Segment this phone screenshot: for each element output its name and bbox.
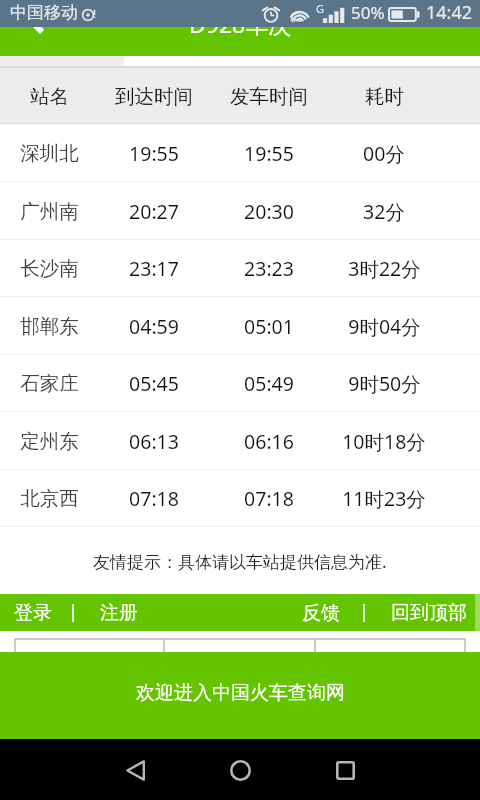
staticText: 反馈 [302,601,340,625]
button[interactable]: 邯郸东 [0,297,480,355]
button[interactable]: 石家庄 [0,354,480,412]
button[interactable]: Home [216,746,264,794]
staticText: 05:49 [244,370,294,397]
staticText: 中国移动 [10,2,78,23]
staticText: 到达时间 [115,84,193,109]
button[interactable]: Recents [321,746,369,794]
staticText: 07:18 [244,485,294,512]
staticText: 深圳北 [20,141,79,166]
staticText: 06:16 [244,428,294,455]
staticText: | [68,599,78,624]
button[interactable]: 深圳北 [0,124,480,182]
staticText: 05:45 [129,370,179,397]
staticText: 长沙南 [20,256,79,281]
staticText: 04:59 [129,313,179,340]
staticText: G [316,1,325,16]
staticText: 06:13 [129,428,179,455]
staticText: 20:27 [129,198,179,225]
button[interactable]: D928车次 [0,0,480,56]
staticText: 定州东 [20,429,79,454]
staticText: 11时23分 [342,485,426,512]
staticText: 登录 [14,601,52,625]
staticText: 23:23 [244,255,294,282]
staticText: 50% [351,1,385,24]
staticText: 站名 [30,84,69,109]
button[interactable]: Back [111,746,159,794]
staticText: 20:30 [244,198,294,225]
staticText: 石家庄 [20,371,79,396]
staticText: 23:17 [129,255,179,282]
button[interactable]: 北京西 [0,469,480,527]
button[interactable]: 定州东 [0,412,480,470]
button[interactable]: 长沙南 [0,239,480,297]
staticText: 32分 [363,198,405,225]
button[interactable]: 欢迎进入中国火车查询网 [0,652,480,739]
staticText: 19:55 [129,140,179,167]
staticText: D928车次 [189,8,292,39]
staticText: 05:01 [244,313,294,340]
button[interactable]: 注册 [100,601,138,625]
staticText: 友情提示：具体请以车站提供信息为准. [93,550,387,573]
button[interactable]: Back [10,0,58,48]
staticText: 注册 [100,601,138,625]
staticText: | [359,599,369,624]
staticText: 9时50分 [348,370,421,397]
button[interactable]: 回到顶部 [391,601,467,625]
staticText: 07:18 [129,485,179,512]
staticText: 广州南 [20,199,79,224]
staticText: 14:42 [426,0,473,25]
staticText: 耗时 [365,84,404,109]
button[interactable]: 反馈 [302,601,340,625]
staticText: 9时04分 [348,313,421,340]
staticText: 欢迎进入中国火车查询网 [136,681,345,705]
staticText: 19:55 [244,140,294,167]
staticText: 10时18分 [342,428,426,455]
staticText: 3时22分 [348,255,421,282]
staticText: 00分 [363,140,405,167]
button[interactable]: 登录 [14,601,52,625]
staticText: 回到顶部 [391,601,467,625]
staticText: 北京西 [20,486,79,511]
staticText: 发车时间 [230,84,308,109]
staticText: 邯郸东 [20,314,79,339]
button[interactable]: 广州南 [0,182,480,240]
